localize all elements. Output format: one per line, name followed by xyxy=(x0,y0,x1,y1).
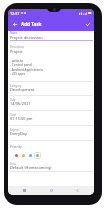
staticText: Add Task xyxy=(21,21,42,27)
staticText: Development xyxy=(10,87,35,92)
button[interactable]: Priority colour xyxy=(20,152,27,159)
staticText: Project discussion xyxy=(10,35,43,40)
staticText: Category xyxy=(10,84,22,88)
staticText: - iOS apps xyxy=(10,72,25,76)
staticText: Date xyxy=(10,98,16,102)
staticText: Description xyxy=(10,45,25,49)
staticText: 14/06/2021 xyxy=(10,101,31,106)
staticText: Priority xyxy=(10,144,22,149)
staticText: Name xyxy=(10,31,18,35)
staticText: Project xyxy=(10,49,23,54)
staticText: - website xyxy=(10,59,24,63)
staticText: Time xyxy=(10,113,17,117)
staticText: Tone xyxy=(10,162,16,166)
button[interactable]: Priority colour xyxy=(13,152,20,159)
staticText: Default (Homecoming) xyxy=(10,165,52,170)
staticText: EveryDay xyxy=(10,131,27,136)
button[interactable]: Back xyxy=(10,20,19,29)
staticText: 12:37 xyxy=(10,11,20,16)
staticText: Repeat xyxy=(10,128,19,132)
button[interactable]: Priority colour xyxy=(34,152,41,159)
staticText: 01:15:00 pm xyxy=(10,116,33,121)
button[interactable]: Back xyxy=(74,187,81,194)
button[interactable]: Recent apps xyxy=(21,187,28,194)
button[interactable]: Save task xyxy=(83,20,92,29)
staticText: - Android Applications xyxy=(10,68,43,72)
button[interactable]: Home xyxy=(48,187,55,194)
button[interactable]: Priority colour xyxy=(27,152,34,159)
staticText: - Control panel xyxy=(10,63,33,67)
